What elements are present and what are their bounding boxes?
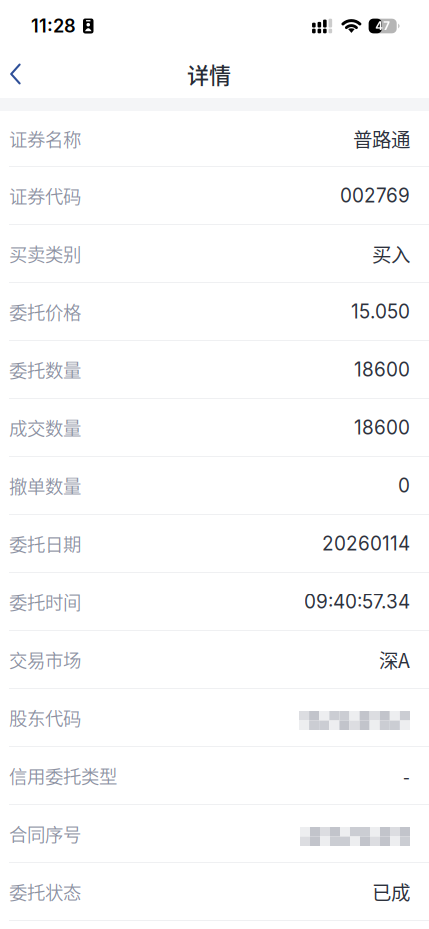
staticText: 委托状态 <box>9 878 81 905</box>
staticText: 47 <box>375 19 390 33</box>
staticText: 18600 <box>354 358 410 381</box>
staticText: 09:40:57.34 <box>304 590 410 613</box>
staticText: 已成 <box>372 877 410 906</box>
staticText: 20260114 <box>322 532 410 555</box>
staticText: 买卖类别 <box>9 240 81 267</box>
staticText: 合同序号 <box>9 820 81 847</box>
staticText: 撤单数量 <box>9 472 81 499</box>
staticText: 0 <box>398 474 410 497</box>
staticText: 委托时间 <box>9 588 81 615</box>
staticText: 002769 <box>340 184 410 207</box>
staticText: 交易市场 <box>9 646 81 673</box>
staticText: 买入 <box>372 239 410 268</box>
staticText: 15.050 <box>351 300 410 323</box>
staticText: 委托日期 <box>9 530 81 557</box>
button[interactable]: Back <box>0 50 37 98</box>
staticText: 普路通 <box>353 124 410 153</box>
staticText: 股东代码 <box>9 704 81 731</box>
staticText: 详情 <box>187 58 231 90</box>
staticText: 18600 <box>354 416 410 439</box>
staticText: 委托价格 <box>9 298 81 325</box>
staticText: 委托数量 <box>9 356 81 383</box>
staticText: - <box>403 761 410 790</box>
staticText: 11:28 <box>31 15 76 37</box>
staticText: 成交数量 <box>9 414 81 441</box>
staticText: 信用委托类型 <box>9 762 117 789</box>
staticText: 证券代码 <box>9 182 81 209</box>
staticText: 证券名称 <box>9 125 81 152</box>
staticText: 深A <box>379 645 410 674</box>
